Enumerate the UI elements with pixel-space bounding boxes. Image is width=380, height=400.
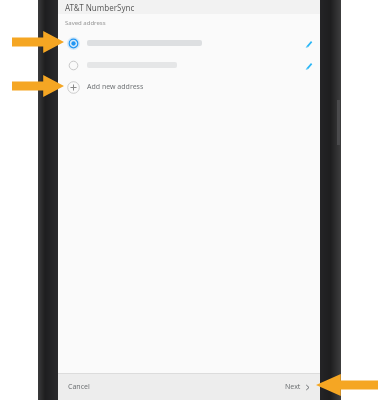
button[interactable]: Add new address <box>58 76 320 98</box>
staticText: AT&T NumberSync <box>65 2 135 13</box>
button[interactable]: Next <box>275 377 320 397</box>
other: Select address <box>67 37 80 50</box>
button[interactable]: Select address <box>58 32 320 54</box>
staticText: Add new address <box>87 82 144 92</box>
button[interactable]: Edit address <box>304 39 313 48</box>
button[interactable]: Select address <box>58 54 320 76</box>
button[interactable]: Edit address <box>304 61 313 70</box>
staticText: Next <box>285 382 301 392</box>
staticText: Saved address <box>65 19 106 27</box>
staticText: Cancel <box>68 382 90 392</box>
other: Select address <box>67 59 80 72</box>
button[interactable]: Cancel <box>58 377 100 397</box>
